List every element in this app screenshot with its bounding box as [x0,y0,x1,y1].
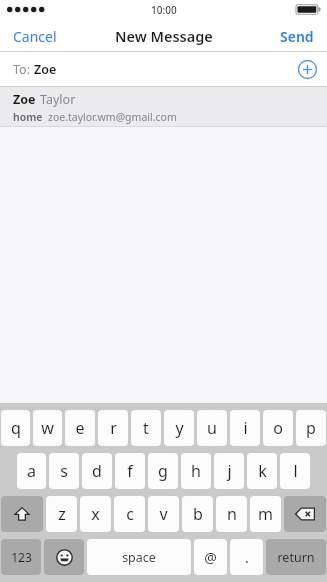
button[interactable]: b [182,496,213,532]
staticText: Taylor [40,91,76,108]
button[interactable]: r [98,410,128,446]
button[interactable]: return [266,539,326,575]
staticText: g [158,460,168,482]
button[interactable]: y [164,410,194,446]
staticText: r [110,417,117,439]
button[interactable]: u [197,410,227,446]
staticText: e [75,417,85,439]
staticText: n [227,503,237,525]
button[interactable]: 123 [1,539,41,575]
button[interactable]: Cancel [0,22,70,51]
button[interactable]: s [49,453,79,489]
button[interactable]: g [148,453,178,489]
button[interactable]: m [250,496,281,532]
staticText: return [277,549,315,566]
staticText: h [191,460,201,482]
button[interactable]: Zoe [0,87,327,127]
button[interactable]: h [181,453,211,489]
staticText: f [127,460,133,482]
button[interactable]: To: [0,52,327,87]
staticText: c [126,503,134,525]
button[interactable]: . [230,539,263,575]
staticText: To: [13,61,34,78]
button[interactable]: q [1,410,30,446]
staticText: Send [280,27,314,46]
staticText: 123 [11,549,32,565]
staticText: zoe.taylor.wm@gmail.com [48,110,177,124]
staticText: home [13,110,43,124]
button[interactable]: e [65,410,95,446]
button[interactable]: Shift [1,496,43,532]
button[interactable]: v [148,496,179,532]
staticText: t [143,417,149,439]
button[interactable]: w [33,410,62,446]
staticText: y [175,417,184,439]
button[interactable]: p [296,410,326,446]
staticText: Cancel [13,27,57,46]
button[interactable]: Send [267,22,327,51]
button[interactable]: Emoji keyboard [44,539,84,575]
staticText: p [306,417,316,439]
button[interactable]: c [114,496,145,532]
button[interactable]: n [216,496,247,532]
button[interactable]: a [17,453,46,489]
staticText: i [243,417,248,439]
staticText: v [159,503,168,525]
staticText: b [193,503,203,525]
button[interactable]: @ [194,539,227,575]
staticText: z [58,503,66,525]
staticText: a [27,460,36,482]
staticText: Zoe [34,61,57,78]
button[interactable]: i [230,410,260,446]
staticText: m [258,503,273,525]
staticText: . [245,548,249,567]
button[interactable]: t [131,410,161,446]
staticText: o [273,417,283,439]
staticText: l [293,460,298,482]
staticText: u [207,417,217,439]
staticText: w [41,417,54,439]
button[interactable]: j [214,453,244,489]
button[interactable]: Backspace [284,496,326,532]
button[interactable]: k [247,453,277,489]
staticText: New Message [115,26,213,46]
staticText: j [227,460,232,482]
staticText: x [91,503,100,525]
staticText: Zoe [13,91,36,108]
button[interactable]: x [80,496,111,532]
button[interactable]: z [46,496,77,532]
staticText: q [11,417,21,439]
staticText: 10:00 [151,3,177,17]
button[interactable]: f [115,453,145,489]
staticText: k [258,460,267,482]
staticText: s [60,460,68,482]
button[interactable]: o [263,410,293,446]
staticText: d [92,460,102,482]
button[interactable]: d [82,453,112,489]
button[interactable]: space [87,539,191,575]
button[interactable]: l [280,453,310,489]
staticText: space [122,549,156,566]
button[interactable]: Add contact [297,59,318,80]
staticText: @ [204,548,217,567]
